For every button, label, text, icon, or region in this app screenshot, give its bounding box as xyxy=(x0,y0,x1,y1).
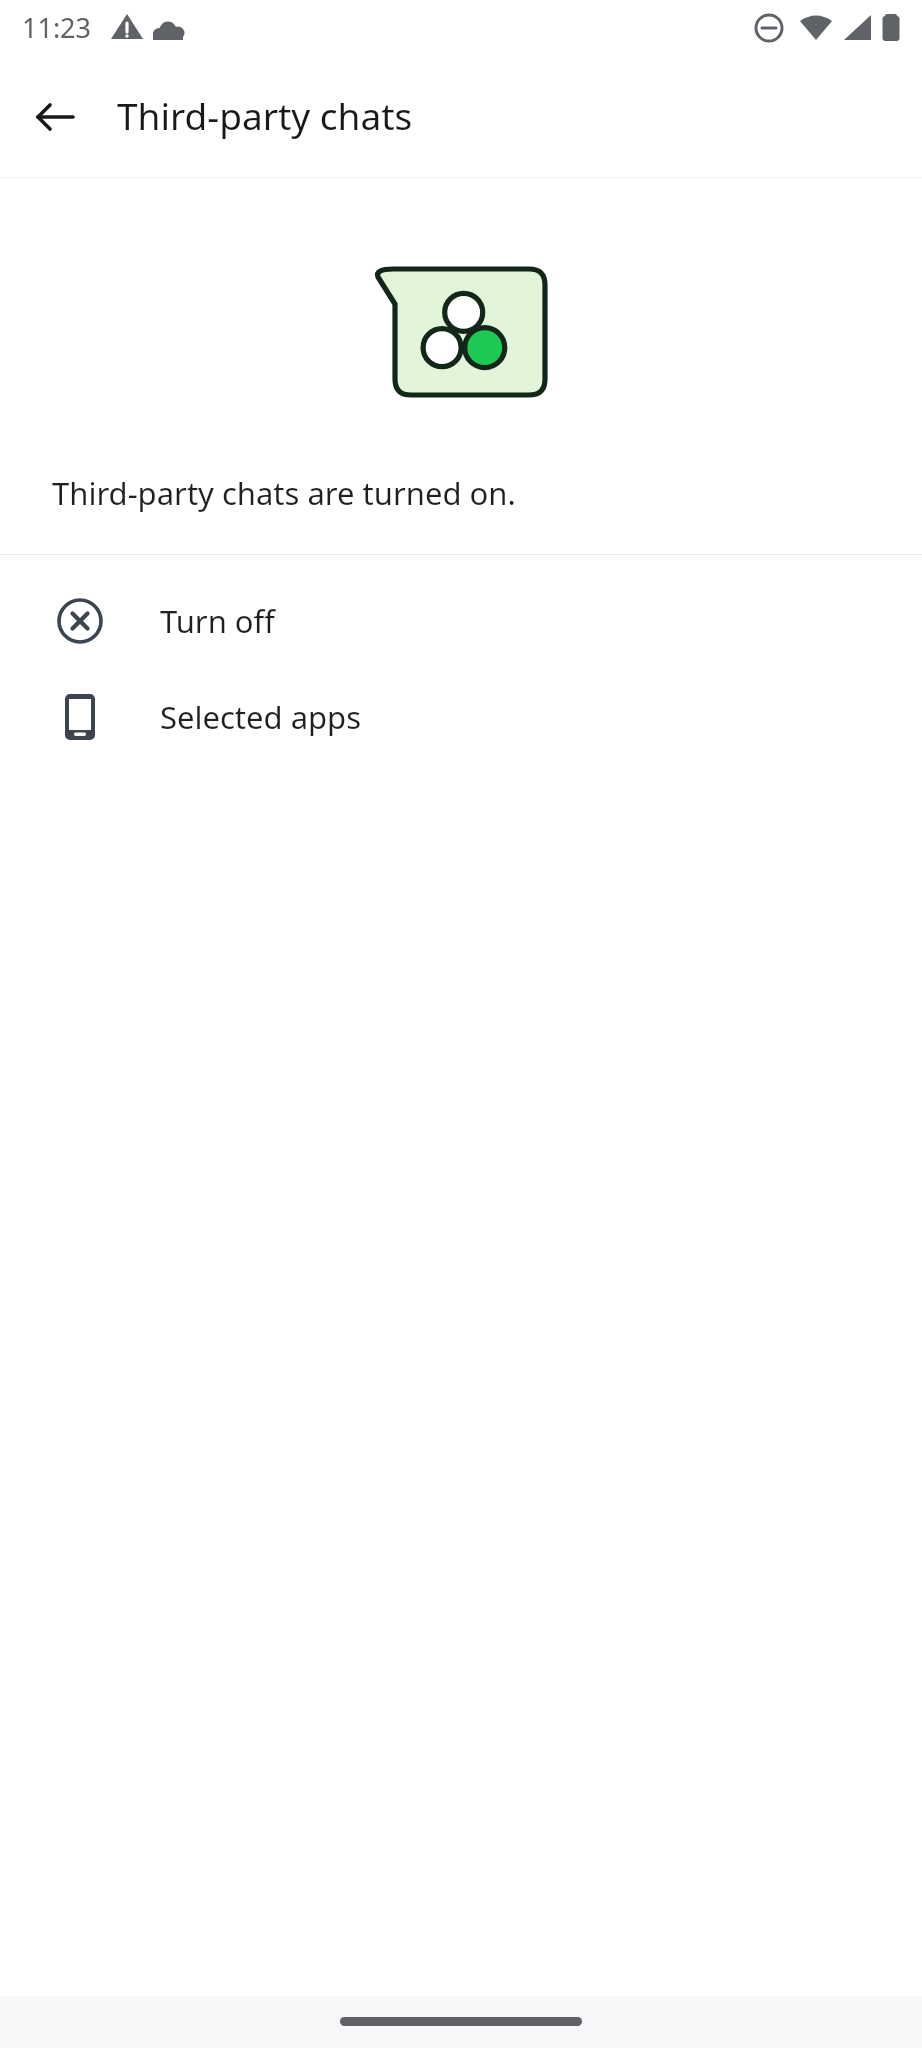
staticText: Third-party chats are turned on. xyxy=(52,472,882,514)
staticText: Third-party chats xyxy=(117,90,413,140)
staticText: Selected apps xyxy=(160,696,362,738)
staticText: Turn off xyxy=(160,600,275,642)
button[interactable]: Selected apps xyxy=(0,669,922,765)
button[interactable]: Back xyxy=(14,76,96,158)
button[interactable]: Turn off xyxy=(0,573,922,669)
staticText: 11:23 xyxy=(22,9,92,46)
